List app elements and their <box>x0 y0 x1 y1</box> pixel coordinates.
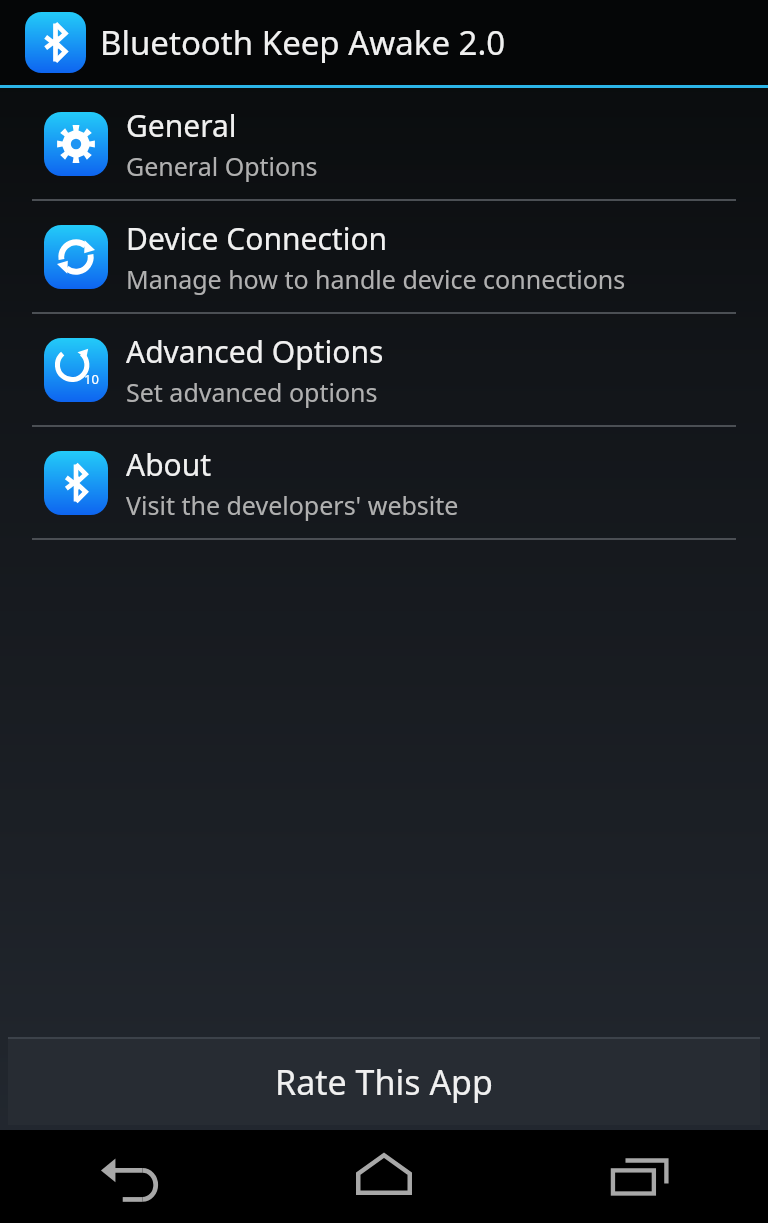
staticText: Rate This App <box>275 1059 493 1105</box>
button[interactable]: Recent apps <box>512 1130 768 1223</box>
staticText: Device Connection <box>126 218 388 259</box>
staticText: Advanced Options <box>126 331 384 372</box>
staticText: About <box>126 444 212 485</box>
staticText: Set advanced options <box>126 375 378 409</box>
staticText: 10 <box>84 370 99 388</box>
staticText: Bluetooth Keep Awake 2.0 <box>100 20 506 65</box>
staticText: General Options <box>126 149 318 183</box>
button[interactable]: Home <box>256 1130 512 1223</box>
staticText: Visit the developers' website <box>126 488 459 522</box>
staticText: General <box>126 105 237 146</box>
button[interactable]: Device Connection <box>0 201 768 314</box>
button[interactable]: About <box>0 427 768 540</box>
button[interactable]: Rate This App <box>8 1039 760 1125</box>
button[interactable]: General <box>0 88 768 201</box>
button[interactable]: Back <box>0 1130 256 1223</box>
staticText: Manage how to handle device connections <box>126 262 626 296</box>
button[interactable]: 10 <box>0 314 768 427</box>
